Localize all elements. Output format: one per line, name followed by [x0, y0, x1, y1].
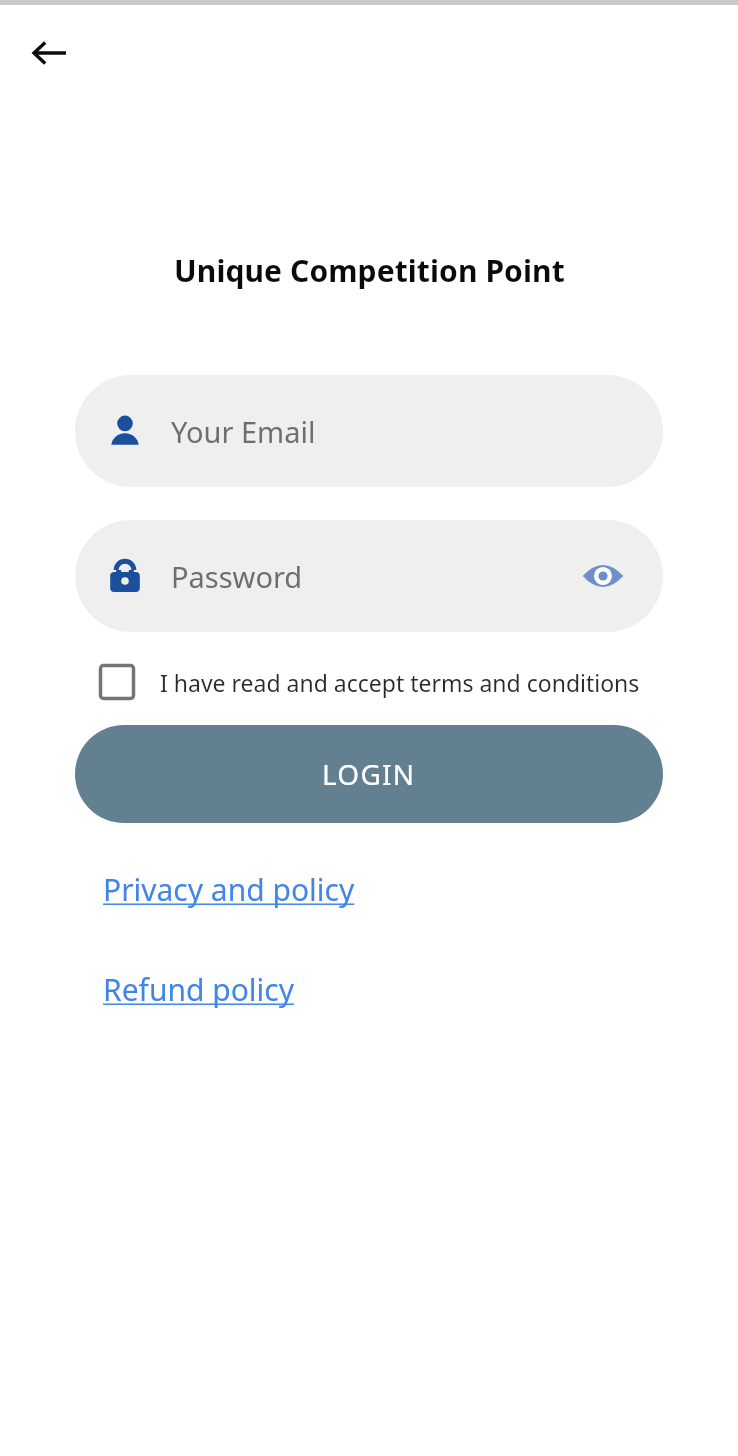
button[interactable]: I have read and accept terms and conditi… [99, 664, 663, 700]
staticText: I have read and accept terms and conditi… [160, 667, 640, 698]
staticText: Privacy and policy [103, 869, 355, 910]
button[interactable]: Refund policy [103, 969, 295, 1010]
staticText: Refund policy [103, 969, 295, 1010]
button[interactable]: Password [75, 520, 663, 632]
button[interactable]: Privacy and policy [103, 869, 355, 910]
button[interactable]: Back [18, 21, 82, 85]
button[interactable]: LOGIN [75, 725, 663, 823]
button[interactable]: Show password [577, 550, 629, 602]
staticText: Your Email [171, 412, 316, 451]
button[interactable]: Your Email [75, 375, 663, 487]
staticText: LOGIN [322, 755, 416, 793]
staticText: Password [171, 557, 303, 596]
staticText: Unique Competition Point [174, 250, 565, 291]
